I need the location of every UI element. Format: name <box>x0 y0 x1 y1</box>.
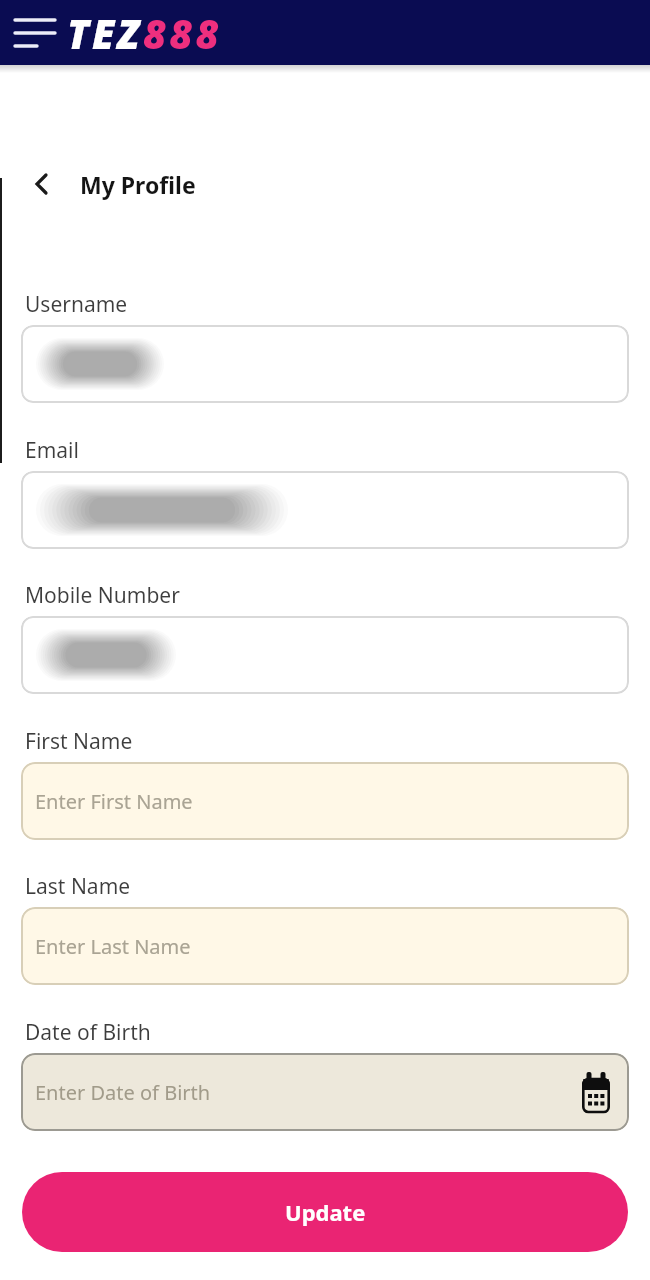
staticText: Last Name <box>25 872 131 901</box>
staticText: Date of Birth <box>25 1018 151 1047</box>
button[interactable] <box>21 471 629 549</box>
staticText: 888 <box>143 6 222 60</box>
staticText: Enter Last Name <box>35 933 191 960</box>
button[interactable]: My Profile <box>30 168 196 200</box>
staticText: TEZ <box>67 6 143 60</box>
button[interactable] <box>21 616 629 694</box>
staticText: Update <box>285 1197 366 1227</box>
button[interactable]: Update <box>22 1172 628 1252</box>
button[interactable] <box>0 0 66 65</box>
staticText: Username <box>25 290 128 319</box>
button[interactable] <box>21 325 629 403</box>
button[interactable]: Enter Date of Birth <box>21 1053 629 1131</box>
staticText: Mobile Number <box>25 581 180 610</box>
staticText: Email <box>25 436 79 465</box>
button[interactable]: Enter First Name <box>21 762 629 840</box>
staticText: First Name <box>25 727 133 756</box>
staticText: Enter First Name <box>35 788 193 815</box>
button[interactable]: Enter Last Name <box>21 907 629 985</box>
staticText: My Profile <box>80 169 196 200</box>
staticText: Enter Date of Birth <box>35 1079 211 1106</box>
